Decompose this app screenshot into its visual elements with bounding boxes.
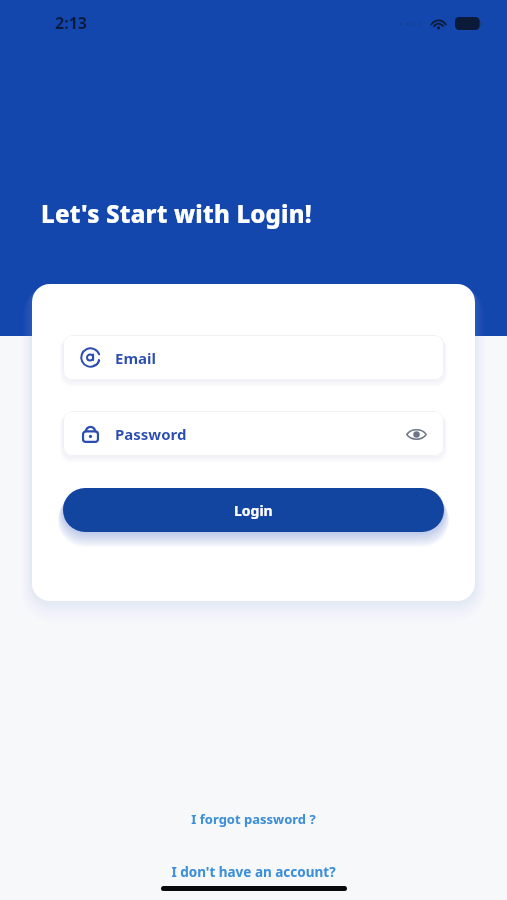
staticText: I forgot password ?	[191, 810, 316, 828]
staticText: 2:13	[55, 12, 87, 34]
button[interactable]: Login	[63, 488, 444, 532]
staticText: Password	[115, 424, 187, 444]
button[interactable]: I don't have an account?	[161, 859, 346, 885]
button[interactable]: Show password	[404, 422, 428, 446]
other: Email	[80, 347, 101, 368]
staticText: I don't have an account?	[171, 863, 336, 881]
button[interactable]: Email	[63, 335, 444, 380]
button[interactable]: I forgot password ?	[181, 806, 326, 832]
button[interactable]: Password	[63, 411, 444, 456]
staticText: Email	[115, 348, 156, 368]
staticText: Let's Start with Login!	[41, 197, 312, 230]
other: Password	[80, 423, 101, 444]
staticText: Login	[234, 501, 273, 520]
